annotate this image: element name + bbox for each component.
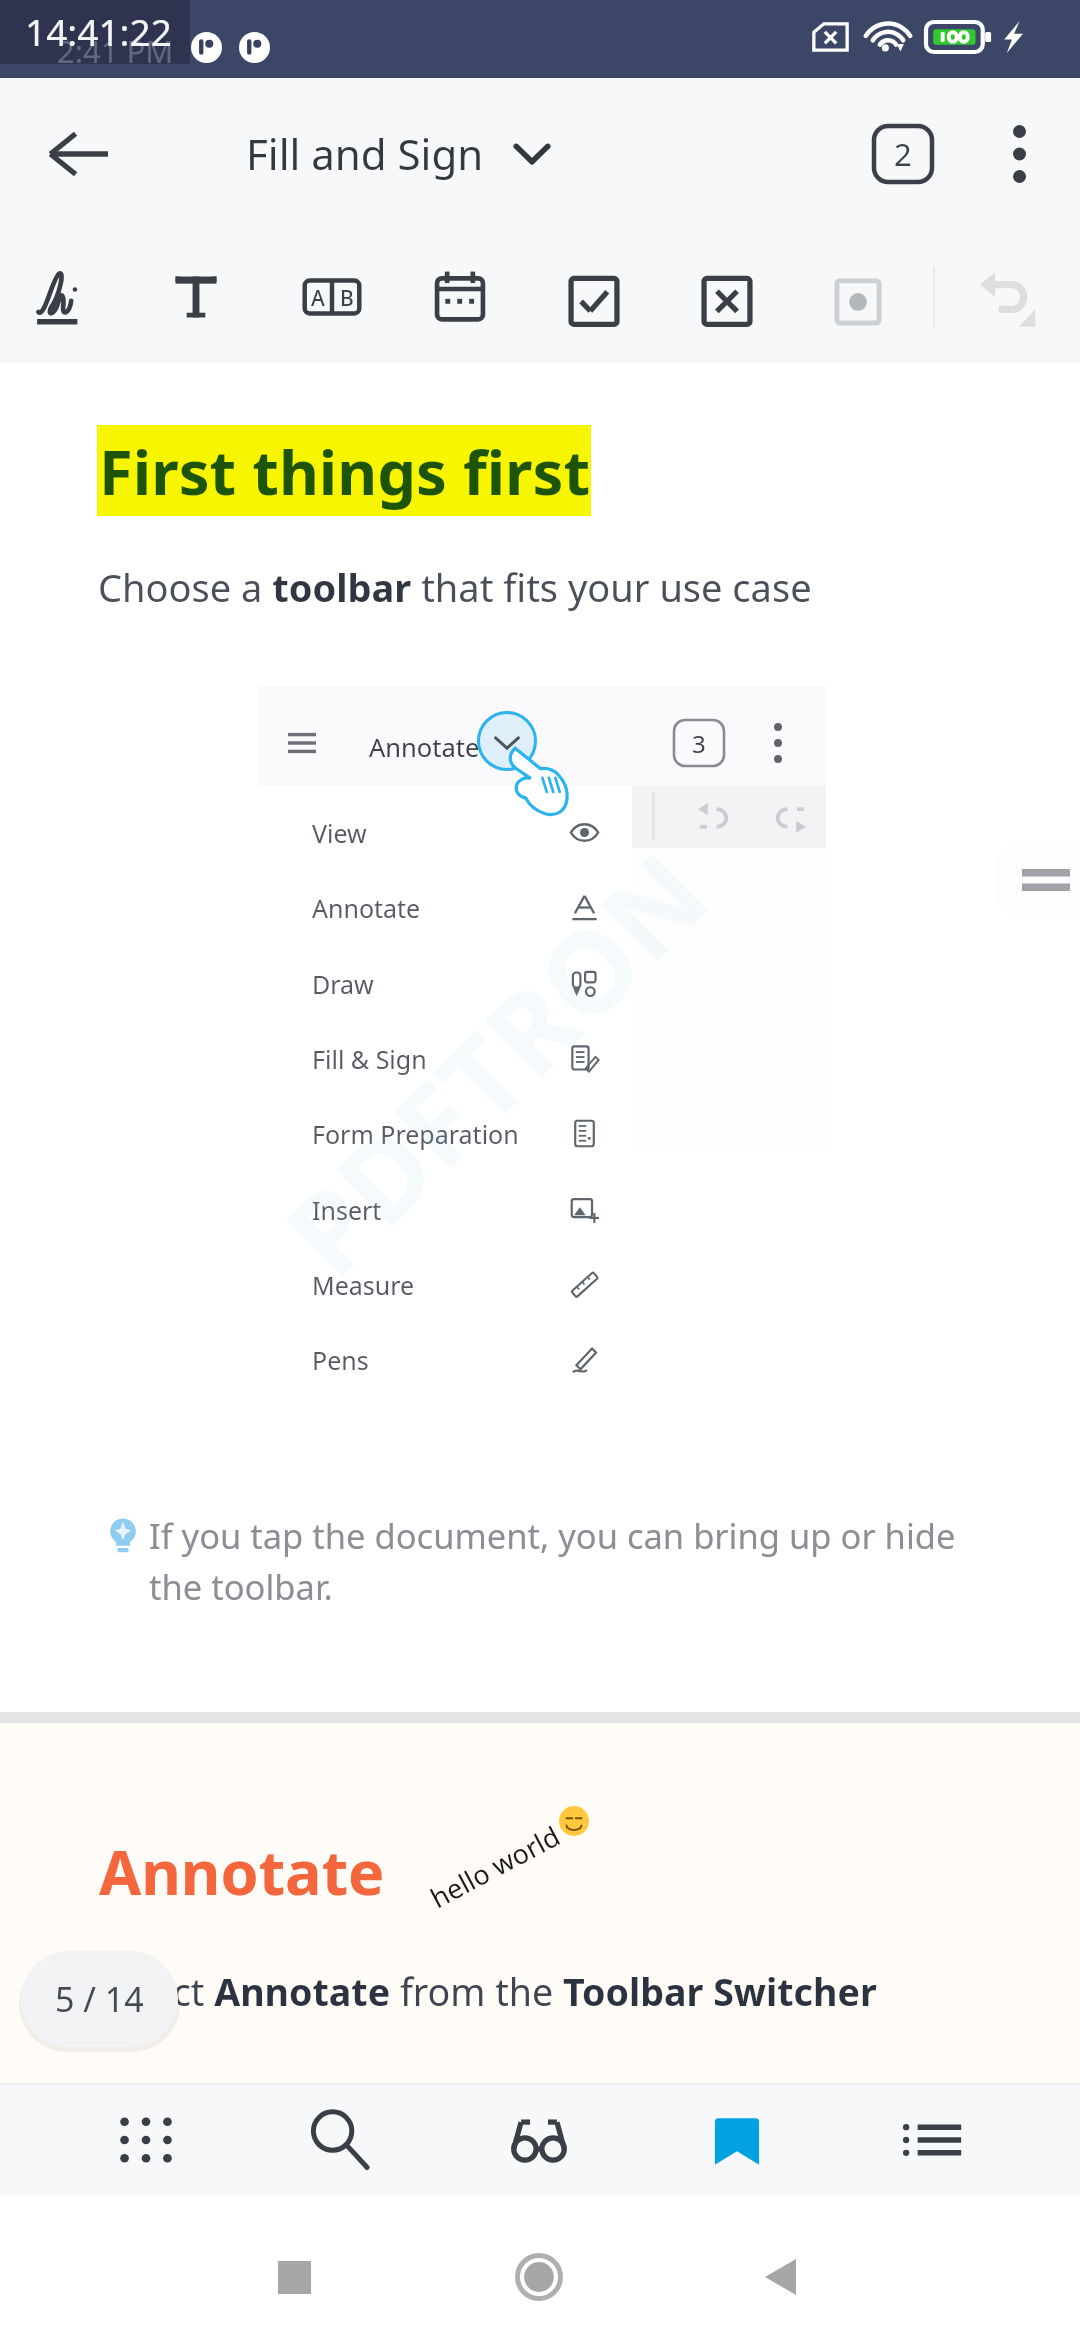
- button[interactable]: Form Preparation: [285, 1096, 632, 1171]
- button[interactable]: Back: [735, 2232, 825, 2322]
- staticText: PDFTRON: [251, 818, 739, 1307]
- button[interactable]: Outline: [887, 2083, 979, 2196]
- staticText: hello world: [424, 1817, 566, 1916]
- staticText: Pens: [312, 1343, 369, 1377]
- button[interactable]: Reading mode: [493, 2083, 585, 2196]
- staticText: Annotate: [369, 730, 480, 765]
- staticText: Form Preparation: [312, 1117, 519, 1151]
- button[interactable]: Measure: [285, 1247, 632, 1322]
- staticText: A: [311, 284, 325, 313]
- button[interactable]: Undo: [968, 230, 1042, 363]
- button[interactable]: Bookmarks: [691, 2083, 783, 2196]
- button[interactable]: Pens: [285, 1322, 632, 1397]
- button[interactable]: 5 / 14: [21, 1951, 178, 2047]
- staticText: Fill & Sign: [312, 1042, 427, 1076]
- button[interactable]: Fill & Sign: [285, 1021, 632, 1096]
- button[interactable]: Initials: [295, 230, 369, 363]
- button[interactable]: Search: [293, 2083, 385, 2196]
- staticText: Annotate: [312, 891, 421, 925]
- staticText: B: [340, 284, 354, 313]
- button[interactable]: Draw: [285, 946, 632, 1021]
- button[interactable]: Signature: [28, 230, 102, 363]
- button[interactable]: Page count: [855, 106, 951, 202]
- staticText: 14:41:22: [25, 6, 172, 56]
- button[interactable]: Insert: [285, 1172, 632, 1247]
- button[interactable]: Dot: [821, 230, 895, 363]
- staticText: Choose a toolbar that fits your use case: [98, 561, 812, 613]
- button[interactable]: Checkmark: [557, 230, 631, 363]
- button[interactable]: Date: [423, 230, 497, 363]
- button[interactable]: Back: [28, 104, 128, 204]
- button[interactable]: View: [285, 795, 632, 870]
- button[interactable]: Fill and Sign: [246, 125, 550, 182]
- staticText: View: [312, 816, 367, 850]
- button[interactable]: Cross: [690, 230, 764, 363]
- staticText: 3: [692, 727, 706, 760]
- staticText: Draw: [312, 967, 374, 1001]
- staticText: Measure: [312, 1268, 415, 1302]
- staticText: First things first: [99, 429, 591, 513]
- staticText: 5 / 14: [55, 1976, 144, 2022]
- staticText: Annotate: [99, 1830, 385, 1913]
- button[interactable]: Thumbnails: [100, 2083, 192, 2196]
- button[interactable]: Recents: [249, 2232, 339, 2322]
- staticText: 2:41 PM: [57, 30, 174, 72]
- button[interactable]: Annotate: [285, 870, 632, 945]
- button[interactable]: Tab: [996, 843, 1080, 917]
- staticText: Select Annotate from the Toolbar Switche…: [100, 1966, 877, 2017]
- staticText: 2: [894, 133, 912, 175]
- button[interactable]: Text: [159, 230, 233, 363]
- staticText: If you tap the document, you can bring u…: [149, 1512, 956, 1610]
- staticText: Fill and Sign: [246, 125, 484, 182]
- button[interactable]: Home: [494, 2232, 584, 2322]
- button[interactable]: More options: [971, 106, 1067, 202]
- staticText: Insert: [312, 1193, 382, 1227]
